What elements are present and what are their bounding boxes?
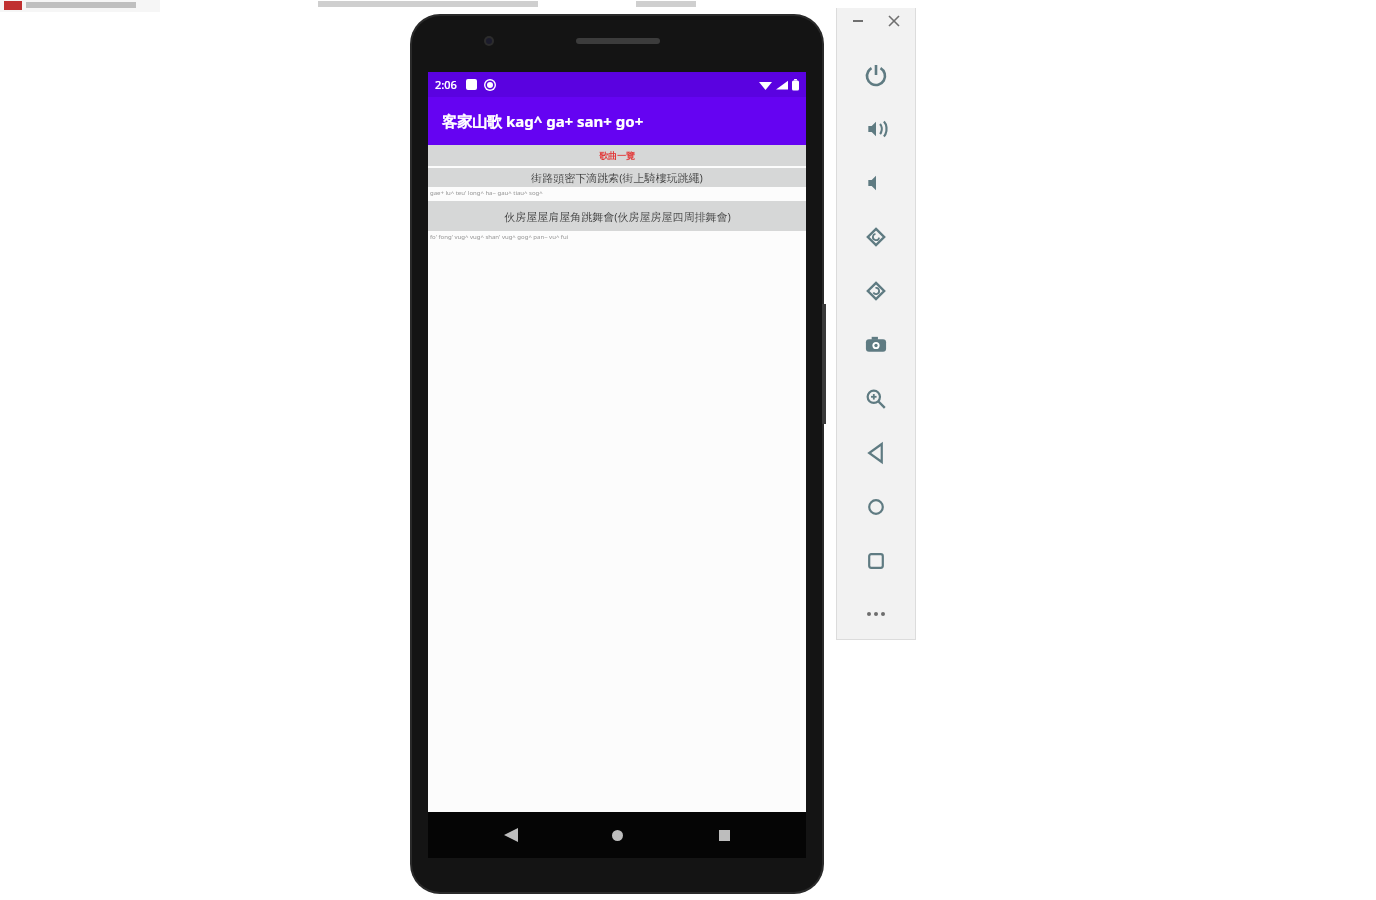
button[interactable]: Rotate left: [836, 210, 916, 264]
button[interactable]: Zoom: [836, 372, 916, 426]
button[interactable]: Volume up: [836, 102, 916, 156]
button[interactable]: Rotate right: [836, 264, 916, 318]
staticText: 歌曲一覽: [599, 150, 635, 161]
staticText: 伙房屋屋肩屋角跳舞會(伙房屋房屋四周排舞會): [504, 209, 731, 224]
button[interactable]: Overview: [836, 534, 916, 588]
button[interactable]: 歌曲一覽: [428, 145, 806, 166]
button[interactable]: Minimize: [845, 8, 871, 34]
button[interactable]: 伙房屋屋肩屋角跳舞會(伙房屋房屋四周排舞會): [428, 201, 806, 231]
button[interactable]: Home: [836, 480, 916, 534]
button[interactable]: Volume down: [836, 156, 916, 210]
button[interactable]: Home: [593, 812, 641, 858]
staticText: 客家山歌 kag^ ga+ san+ go+: [442, 111, 644, 131]
staticText: gae+ lu^ teu' long^ ha~ gau^ tiau^ sog^: [430, 189, 543, 197]
staticText: fo' fong' vug^ vug^ shan' vug^ gog^ pan~…: [430, 233, 569, 241]
button[interactable]: Back: [836, 426, 916, 480]
button[interactable]: Power: [836, 48, 916, 102]
staticText: 街路頭密下滴跳索(街上騎樓玩跳繩): [531, 170, 703, 185]
button[interactable]: 街路頭密下滴跳索(街上騎樓玩跳繩): [428, 168, 806, 187]
staticText: 2:06: [435, 77, 457, 92]
button[interactable]: Back: [487, 812, 535, 858]
button[interactable]: Take screenshot: [836, 318, 916, 372]
button[interactable]: More: [836, 588, 916, 640]
button[interactable]: Recent apps: [700, 812, 748, 858]
button[interactable]: Close: [881, 8, 907, 34]
